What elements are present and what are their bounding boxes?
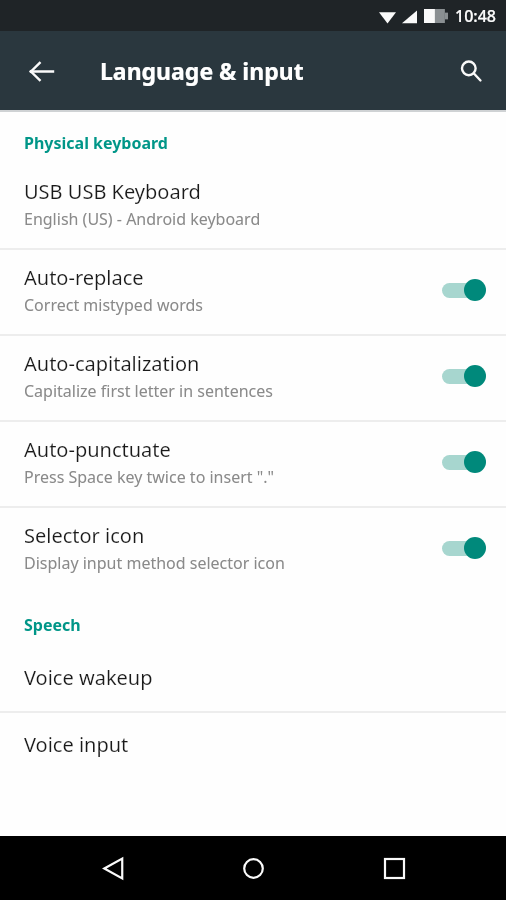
button[interactable]: Toggle on	[438, 275, 486, 305]
staticText: 10:48	[455, 5, 496, 27]
staticText: Display input method selector icon	[24, 552, 285, 574]
staticText: Voice input	[24, 731, 129, 758]
staticText: English (US) - Android keyboard	[24, 208, 261, 230]
staticText: Press Space key twice to insert "."	[24, 466, 275, 488]
staticText: Physical keyboard	[24, 132, 168, 154]
button[interactable]: Toggle on	[438, 533, 486, 563]
staticText: Auto-replace	[24, 264, 144, 291]
button[interactable]: Auto-capitalization	[0, 336, 506, 420]
staticText: Correct mistyped words	[24, 294, 203, 316]
staticText: Language & input	[100, 55, 304, 86]
button[interactable]: Home	[225, 840, 281, 896]
staticText: Selector icon	[24, 522, 145, 549]
staticText: Voice wakeup	[24, 664, 153, 691]
button[interactable]: Toggle on	[438, 447, 486, 477]
button[interactable]: Navigate up	[14, 44, 68, 98]
button[interactable]: USB USB Keyboard	[0, 164, 506, 248]
staticText: Capitalize first letter in sentences	[24, 380, 273, 402]
button[interactable]: Selector icon	[0, 508, 506, 592]
staticText: USB USB Keyboard	[24, 178, 201, 205]
staticText: Auto-punctuate	[24, 436, 171, 463]
button[interactable]: Voice wakeup	[0, 646, 506, 711]
button[interactable]: Toggle on	[438, 361, 486, 391]
staticText: Auto-capitalization	[24, 350, 200, 377]
button[interactable]: Search	[446, 46, 496, 96]
staticText: Speech	[24, 614, 81, 636]
button[interactable]: Voice input	[0, 713, 506, 778]
button[interactable]: Auto-replace	[0, 250, 506, 334]
button[interactable]: Recent apps	[366, 840, 422, 896]
button[interactable]: Back	[85, 840, 141, 896]
button[interactable]: Auto-punctuate	[0, 422, 506, 506]
